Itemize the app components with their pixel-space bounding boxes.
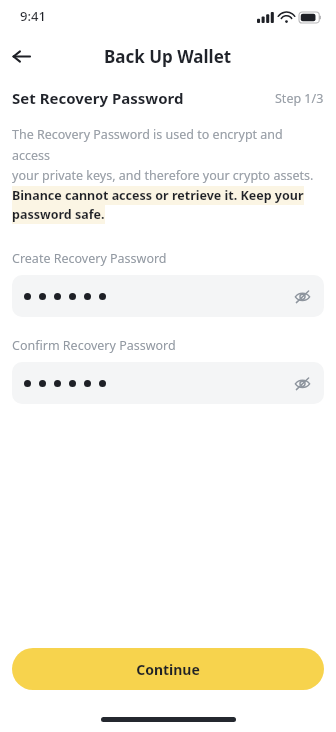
staticText: Step 1/3: [275, 90, 324, 107]
staticText: Set Recovery Password: [12, 88, 184, 108]
button[interactable]: Show password: [12, 362, 324, 404]
staticText: Create Recovery Password: [12, 250, 167, 267]
button[interactable]: Show password: [290, 371, 314, 395]
staticText: your private keys, and therefore your cr…: [12, 167, 314, 184]
staticText: password safe.: [12, 206, 105, 223]
button[interactable]: Back: [6, 41, 36, 71]
staticText: Binance cannot access or retrieve it. Ke…: [12, 187, 304, 204]
staticText: 9:41: [20, 7, 46, 25]
staticText: Continue: [136, 660, 200, 679]
button[interactable]: Show password: [12, 275, 324, 317]
button[interactable]: Show password: [290, 284, 314, 308]
staticText: Confirm Recovery Password: [12, 337, 176, 354]
button[interactable]: Continue: [12, 648, 324, 690]
staticText: The Recovery Password is used to encrypt…: [12, 126, 324, 164]
staticText: Back Up Wallet: [104, 45, 232, 68]
